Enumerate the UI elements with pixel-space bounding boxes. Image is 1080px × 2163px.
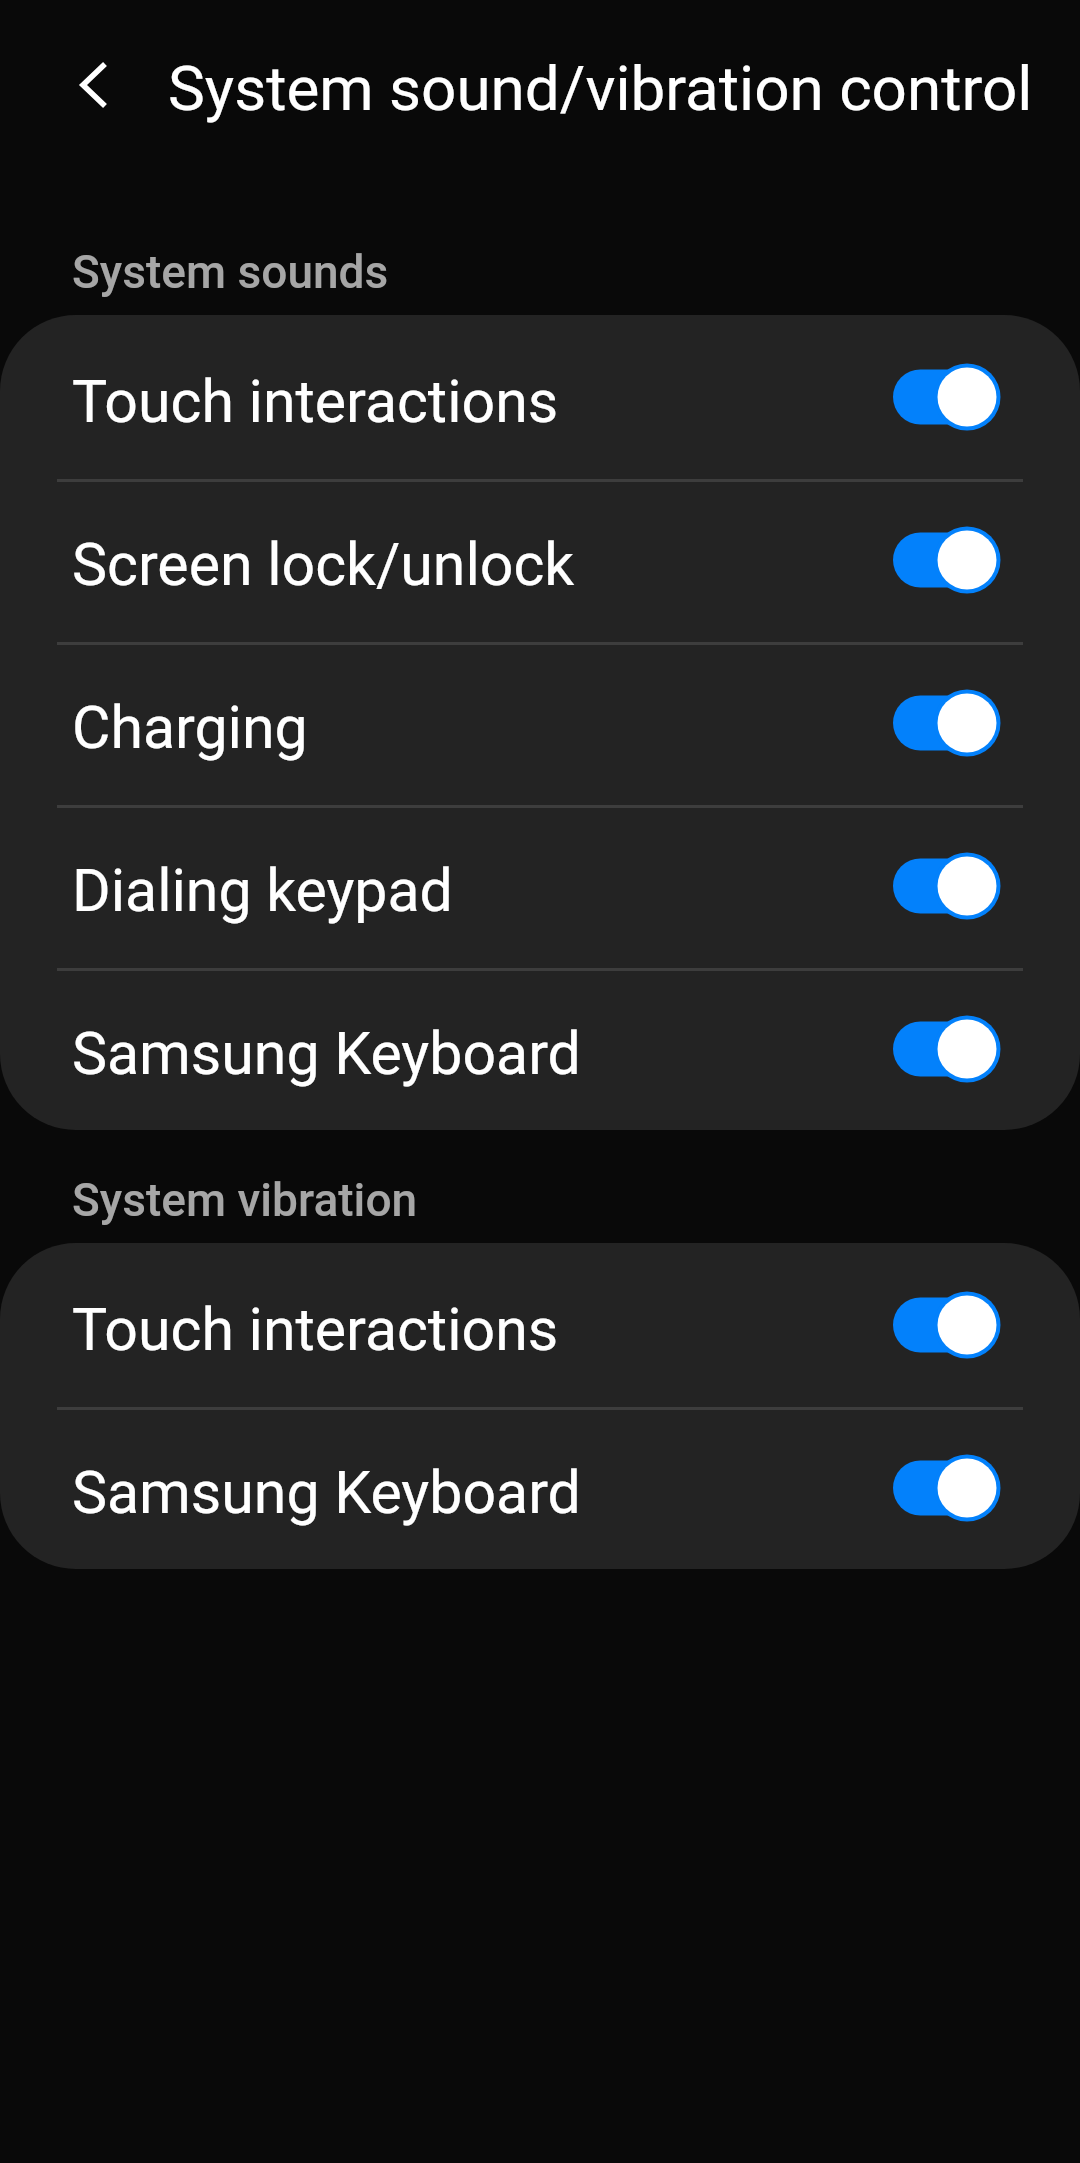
button[interactable]: Touch interactions [0,1243,1080,1406]
staticText: Dialing keypad [72,856,888,925]
button[interactable]: Toggle [888,1443,1006,1533]
staticText: Samsung Keyboard [72,1458,888,1527]
button[interactable]: Toggle [888,678,1006,768]
staticText: Charging [72,693,888,762]
button[interactable]: Toggle [888,1004,1006,1094]
staticText: System sound/vibration control [168,52,1033,125]
staticText: System vibration [72,1173,418,1227]
staticText: Touch interactions [72,1295,888,1364]
button[interactable]: Screen lock/unlock [0,478,1080,641]
button[interactable]: Samsung Keyboard [0,967,1080,1130]
button[interactable]: Samsung Keyboard [0,1406,1080,1569]
button[interactable]: Charging [0,641,1080,804]
button[interactable]: Toggle [888,841,1006,931]
staticText: Screen lock/unlock [72,530,888,599]
button[interactable]: Toggle [888,352,1006,442]
button[interactable]: Toggle [888,1280,1006,1370]
staticText: System sounds [72,245,389,299]
button[interactable]: Dialing keypad [0,804,1080,967]
staticText: Samsung Keyboard [72,1019,888,1088]
staticText: Touch interactions [72,367,888,436]
button[interactable]: Toggle [888,515,1006,605]
button[interactable]: Navigate up [48,39,140,131]
button[interactable]: Touch interactions [0,315,1080,478]
